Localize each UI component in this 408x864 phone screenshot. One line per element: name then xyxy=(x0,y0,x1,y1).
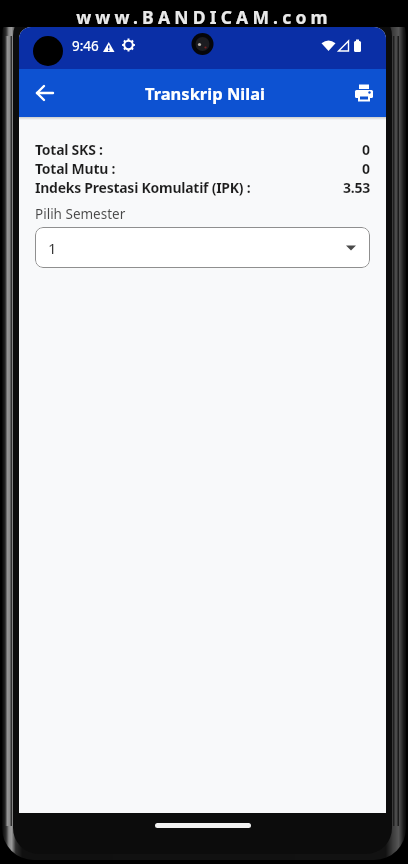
button[interactable]: 1 xyxy=(35,227,370,268)
staticText: Indeks Prestasi Komulatif (IPK) : xyxy=(35,178,251,197)
staticText: 9:46 xyxy=(72,37,99,55)
staticText: 3.53 xyxy=(343,178,370,197)
staticText: Total Mutu : xyxy=(35,159,116,178)
staticText: www.BANDICAM.com xyxy=(76,5,332,29)
staticText: Transkrip Nilai xyxy=(145,82,265,104)
staticText: Total SKS : xyxy=(35,140,103,159)
staticText: 0 xyxy=(362,159,370,178)
button[interactable] xyxy=(27,75,63,111)
staticText: 1 xyxy=(48,238,57,258)
staticText: Pilih Semester xyxy=(35,205,126,223)
staticText: 0 xyxy=(362,140,370,159)
button[interactable] xyxy=(346,75,382,111)
